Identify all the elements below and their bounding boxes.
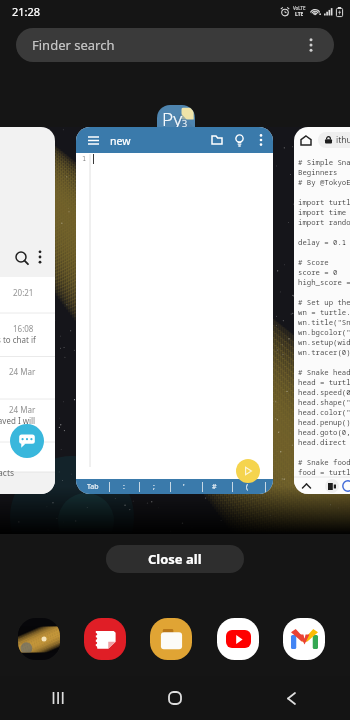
button[interactable]: YouTube xyxy=(217,618,259,660)
staticText: 1 xyxy=(82,154,87,164)
staticText: import rando xyxy=(298,217,350,227)
staticText: LTE xyxy=(295,11,304,18)
button[interactable]: Menu xyxy=(76,127,273,494)
staticText: food.shape(" xyxy=(298,487,350,494)
staticText: tacts xyxy=(0,467,15,479)
staticText: high_score = xyxy=(298,277,350,287)
button[interactable]: Recents xyxy=(0,676,116,720)
button[interactable]: ' xyxy=(172,479,196,494)
staticText: s to chat if xyxy=(0,334,36,345)
staticText: # Simple Sna xyxy=(298,157,350,167)
staticText: 24 Mar xyxy=(9,366,36,377)
staticText: # Set up the xyxy=(298,297,350,307)
button[interactable]: New message xyxy=(10,424,44,458)
staticText: head.color(" xyxy=(298,407,350,417)
staticText: import time xyxy=(298,207,347,217)
button[interactable]: Home xyxy=(299,133,313,147)
staticText: saved I will xyxy=(0,415,36,426)
staticText: wn.tracer(0) xyxy=(298,347,350,357)
button[interactable]: 20:21 xyxy=(0,127,55,494)
staticText: ; xyxy=(153,482,155,492)
button[interactable]: Expand xyxy=(298,477,314,494)
staticText: Py xyxy=(162,106,183,132)
staticText: 16:08 xyxy=(13,323,34,334)
staticText: 24 Mar xyxy=(9,404,36,415)
staticText: new xyxy=(110,134,131,148)
staticText: import turtl xyxy=(298,197,350,207)
staticText: wn.bgcolor(" xyxy=(298,327,350,337)
staticText: # Score xyxy=(298,257,329,267)
button[interactable]: Pydroid 3 xyxy=(157,105,195,141)
staticText: ithu xyxy=(336,134,350,146)
staticText: score = 0 xyxy=(298,267,338,277)
button[interactable]: Hint xyxy=(229,127,249,153)
button[interactable]: Finder search xyxy=(16,28,334,62)
button[interactable]: Gmail xyxy=(283,618,325,660)
button[interactable]: ( xyxy=(235,479,259,494)
button[interactable]: Home xyxy=(294,127,350,494)
staticText: wn = turtle. xyxy=(298,307,350,317)
button[interactable]: Samsung Notes xyxy=(84,618,126,660)
staticText: head.shape(" xyxy=(298,397,350,407)
button[interactable]: Home xyxy=(116,676,233,720)
staticText: head.direct xyxy=(298,437,347,447)
staticText: ' xyxy=(183,482,185,492)
button[interactable]: # xyxy=(202,479,226,494)
button[interactable]: Back xyxy=(233,676,350,720)
staticText: delay = 0.1 xyxy=(298,237,347,247)
staticText: 3 xyxy=(182,117,188,129)
staticText: 21:28 xyxy=(12,4,41,19)
button[interactable]: Open file xyxy=(206,127,227,153)
button[interactable]: : xyxy=(112,479,136,494)
staticText: # Snake head xyxy=(298,367,350,377)
staticText: wn.title("Sn xyxy=(298,317,350,327)
button[interactable]: More options xyxy=(251,127,271,153)
button[interactable]: Run xyxy=(236,459,260,483)
staticText: head.penup() xyxy=(298,417,350,427)
staticText: : xyxy=(123,482,125,492)
staticText: Tab xyxy=(87,482,99,492)
staticText: Beginners xyxy=(298,167,338,177)
button[interactable]: ; xyxy=(142,479,166,494)
button[interactable]: My Files xyxy=(150,618,192,660)
button[interactable]: Tabs xyxy=(325,479,339,493)
button[interactable]: Menu xyxy=(83,127,103,153)
button[interactable]: Gallery xyxy=(18,618,60,660)
staticText: 20:21 xyxy=(13,287,34,298)
staticText: food = turtl xyxy=(298,467,350,477)
staticText: head = turtl xyxy=(298,377,350,387)
staticText: # xyxy=(212,482,217,492)
button[interactable]: More options xyxy=(302,36,320,54)
staticText: ( xyxy=(246,482,249,492)
button[interactable]: Tab xyxy=(81,479,105,494)
staticText: head.speed(0 xyxy=(298,387,350,397)
staticText: food.speed(0 xyxy=(298,477,350,487)
staticText: VoLTE xyxy=(293,5,306,11)
staticText: Close all xyxy=(148,550,202,568)
staticText: head.goto(0, xyxy=(298,427,350,437)
button[interactable]: ithu xyxy=(318,132,350,148)
staticText: Finder search xyxy=(32,36,115,54)
staticText: # By @TokyoE xyxy=(298,177,350,187)
button[interactable]: Close all xyxy=(106,545,244,573)
staticText: wn.setup(wid xyxy=(298,337,350,347)
staticText: # Snake food xyxy=(298,457,350,467)
